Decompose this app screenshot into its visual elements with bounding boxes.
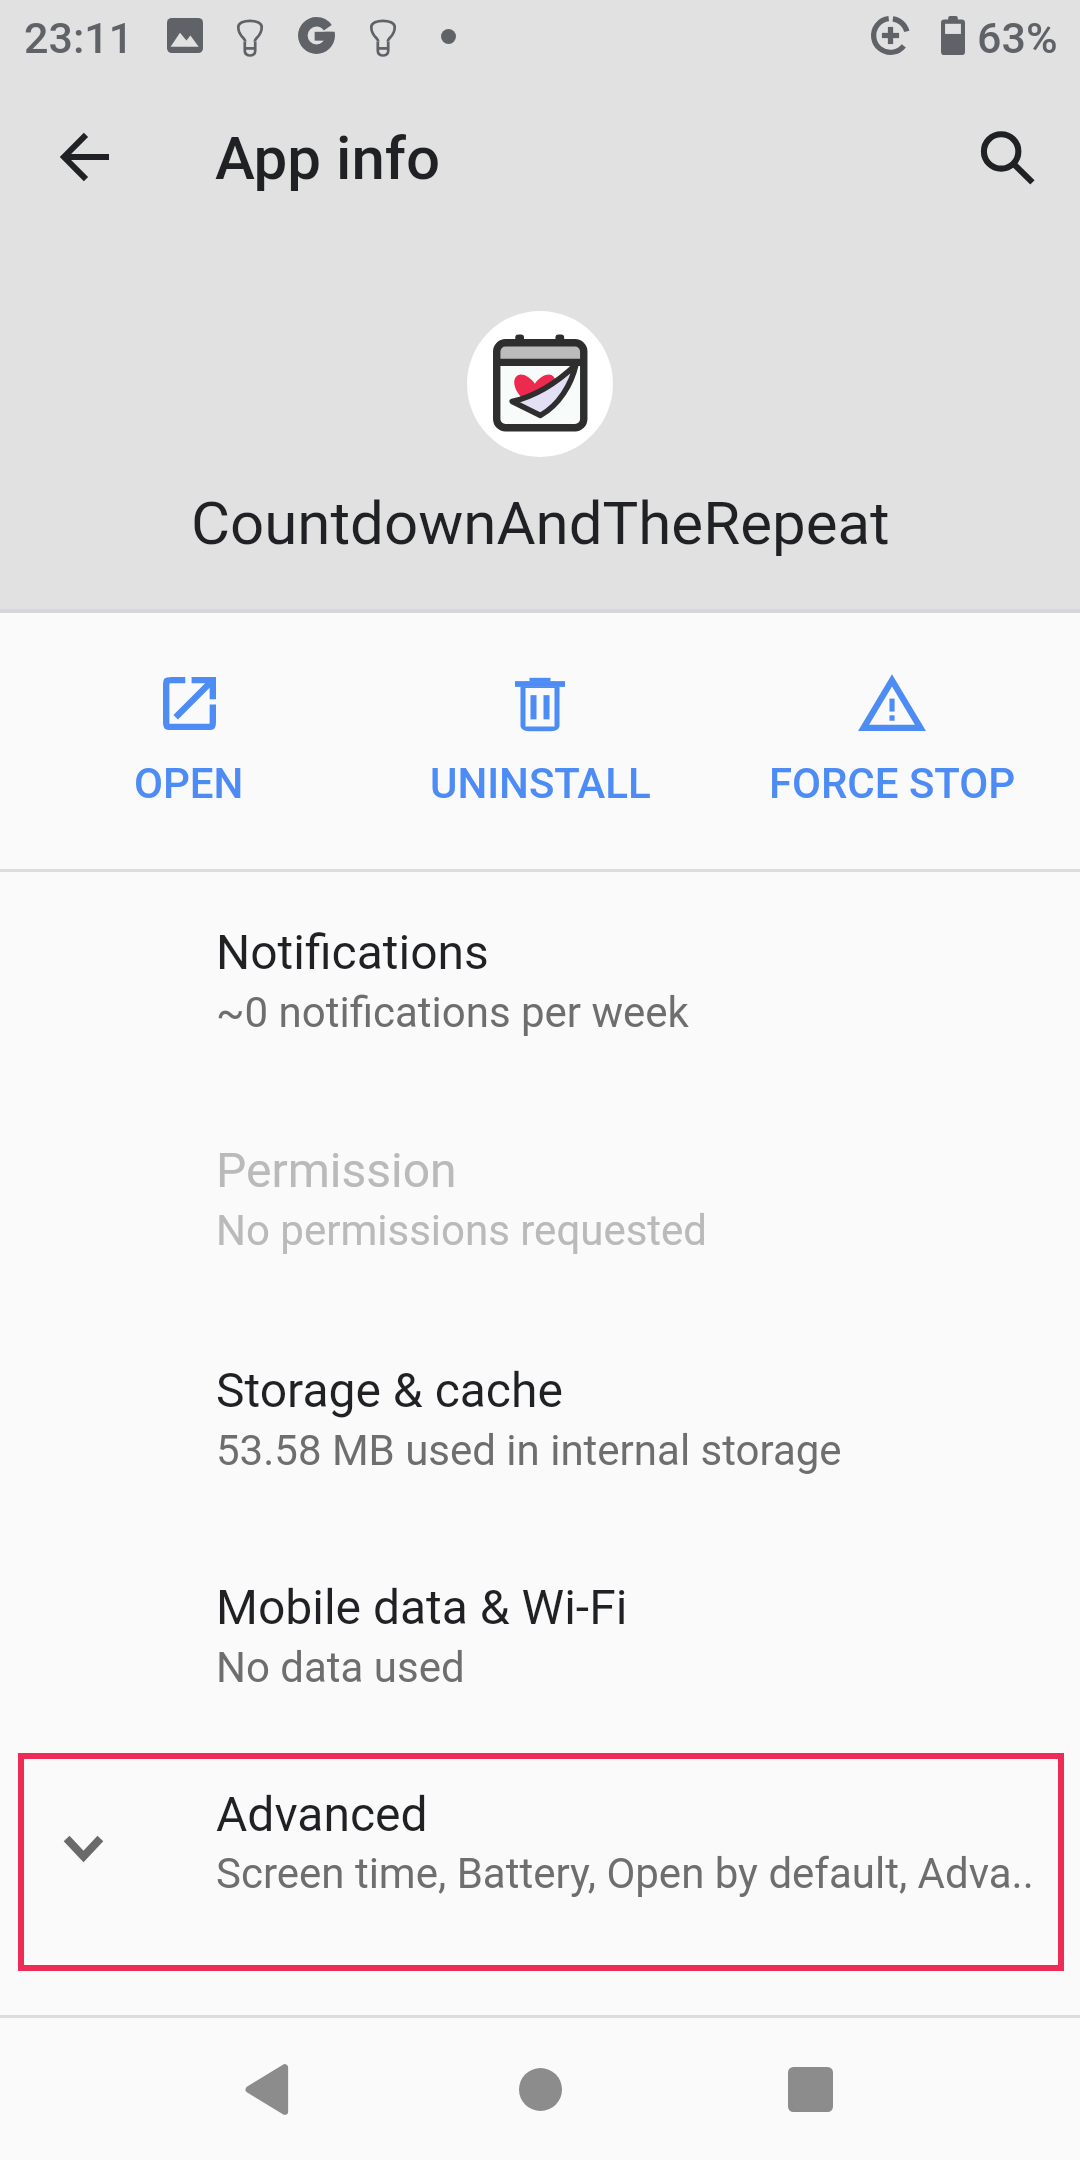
button[interactable]: Home	[405, 2018, 675, 2160]
button[interactable]: Notifications	[0, 859, 1080, 1024]
staticText: Advanced	[216, 1786, 428, 1842]
staticText: 53.58 MB used in internal storage	[216, 1426, 842, 1475]
staticText: App info	[215, 123, 441, 193]
staticText: Permission	[216, 1142, 457, 1198]
staticText: Notifications	[216, 924, 489, 980]
button[interactable]: Advanced	[0, 1753, 1080, 1971]
staticText: ~0 notifications per week	[216, 988, 689, 1037]
button[interactable]: Mobile data & Wi-Fi	[0, 1514, 1080, 1679]
staticText: OPEN	[134, 759, 244, 808]
button[interactable]: Search	[961, 111, 1053, 203]
button[interactable]: Recent apps	[675, 2018, 945, 2160]
button[interactable]: Storage & cache	[0, 1297, 1080, 1462]
button[interactable]: Back	[132, 2018, 402, 2160]
staticText: Storage & cache	[216, 1362, 563, 1418]
staticText: No permissions requested	[216, 1206, 708, 1255]
staticText: Mobile data & Wi-Fi	[216, 1579, 628, 1635]
button[interactable]: Navigate up	[39, 111, 131, 203]
staticText: No data used	[216, 1643, 465, 1692]
staticText: Screen time, Battery, Open by default, A…	[216, 1849, 1034, 1898]
staticText: CountdownAndTheRepeat	[191, 488, 890, 558]
staticText: 23:11	[24, 13, 134, 63]
staticText: 63%	[977, 13, 1058, 63]
button[interactable]: UNINSTALL	[360, 613, 720, 869]
staticText: FORCE STOP	[769, 759, 1016, 808]
staticText: UNINSTALL	[430, 759, 651, 808]
button[interactable]: Permission	[0, 1077, 1080, 1242]
button[interactable]: FORCE STOP	[720, 613, 1080, 869]
button[interactable]: OPEN	[0, 613, 360, 869]
